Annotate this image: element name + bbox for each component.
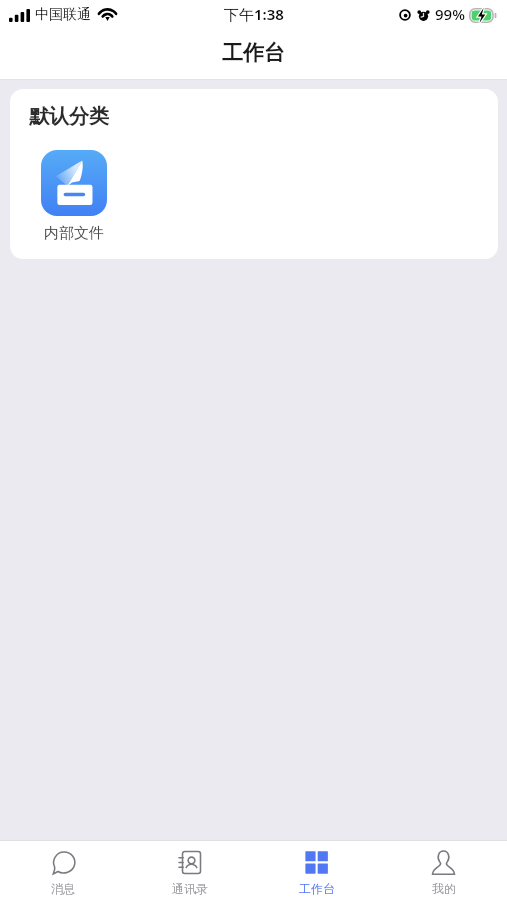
button[interactable]: 工作台 xyxy=(253,841,380,900)
other: 通讯录 xyxy=(177,850,202,875)
other: 消息 xyxy=(51,850,76,875)
staticText: 工作台 xyxy=(299,881,335,896)
staticText: 默认分类 xyxy=(29,104,109,129)
other: 我的 xyxy=(431,850,456,875)
button[interactable]: 我的 xyxy=(380,841,507,900)
other: 工作台 xyxy=(304,850,329,875)
button[interactable]: 内部文件 xyxy=(21,150,127,243)
staticText: 我的 xyxy=(432,881,456,896)
staticText: 中国联通 xyxy=(35,6,91,24)
staticText: 通讯录 xyxy=(172,881,208,896)
staticText: 内部文件 xyxy=(44,224,104,243)
button[interactable]: 消息 xyxy=(0,841,126,900)
staticText: 99% xyxy=(435,4,465,24)
staticText: 工作台 xyxy=(222,40,285,66)
staticText: 消息 xyxy=(51,881,75,896)
staticText: 下午1:38 xyxy=(224,4,284,24)
button[interactable]: 通讯录 xyxy=(126,841,253,900)
